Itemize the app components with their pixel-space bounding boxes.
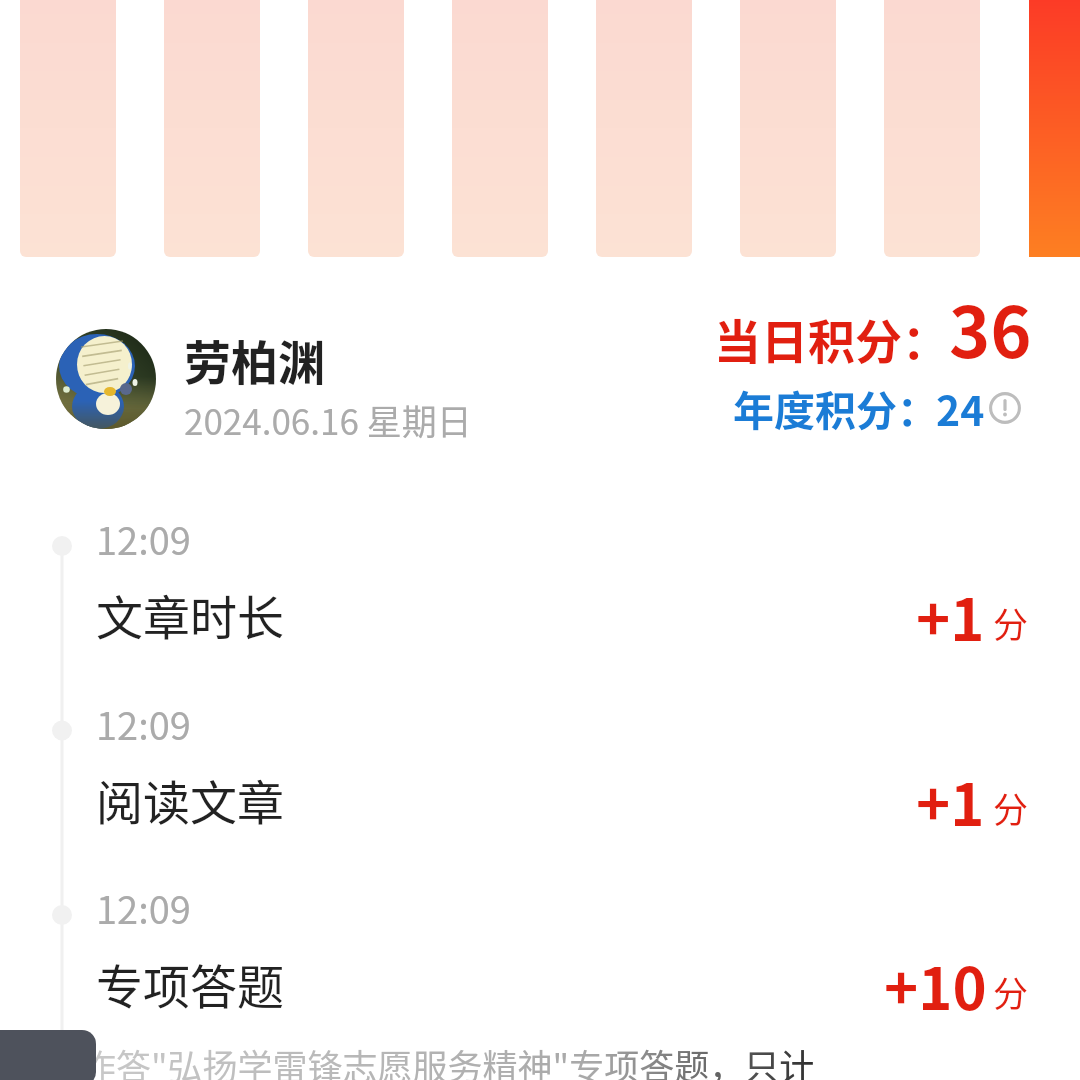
button[interactable]: Info <box>989 392 1021 424</box>
staticText: 12:09 <box>96 696 191 751</box>
staticText: 作答"弘扬学雷锋志愿服务精神"专项答题，只计 <box>81 1039 815 1080</box>
button[interactable]: 12:09 <box>30 508 1060 688</box>
staticText: +10 <box>884 943 987 1027</box>
staticText: +1 <box>916 759 985 843</box>
staticText: 劳柏渊 <box>184 325 325 393</box>
staticText: 2024.06.16 星期日 <box>184 394 472 445</box>
staticText: 专项答题 <box>96 949 284 1017</box>
staticText: 年度积分： <box>733 378 938 437</box>
staticText: 分 <box>993 597 1029 648</box>
staticText: 36 <box>949 277 1032 378</box>
staticText: 分 <box>993 782 1029 833</box>
staticText: +1 <box>916 574 985 658</box>
staticText: 12:09 <box>96 880 191 935</box>
button[interactable]: Today card <box>1029 0 1080 257</box>
button[interactable]: 12:09 <box>30 877 1060 1057</box>
staticText: 文章时长 <box>96 580 284 648</box>
staticText: 24 <box>936 378 985 437</box>
button[interactable]: Floating action <box>0 1030 96 1080</box>
button[interactable]: 12:09 <box>30 693 1060 873</box>
button[interactable]: Profile avatar <box>56 329 156 429</box>
staticText: 阅读文章 <box>96 765 284 833</box>
staticText: 分 <box>993 966 1029 1017</box>
staticText: 当日积分： <box>714 304 949 372</box>
staticText: 12:09 <box>96 511 191 566</box>
